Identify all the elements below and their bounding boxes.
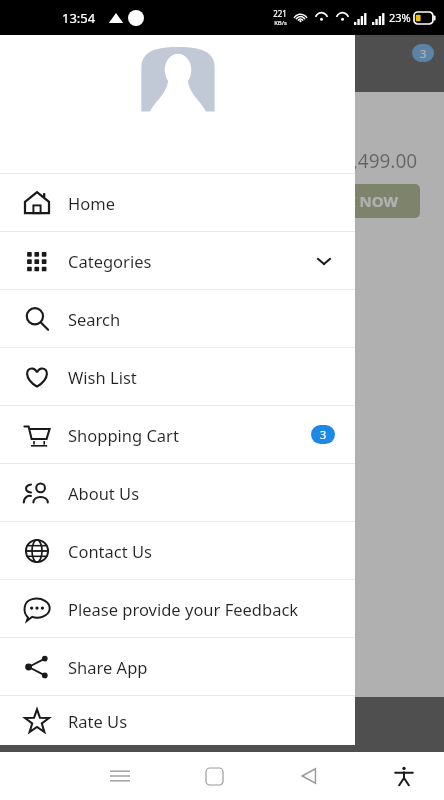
- staticText: Categories: [68, 250, 152, 272]
- button[interactable]: Please provide your Feedback: [0, 580, 355, 637]
- button[interactable]: Home: [192, 754, 236, 798]
- staticText: Rate Us: [68, 710, 128, 732]
- button[interactable]: Categories: [0, 232, 355, 289]
- button[interactable]: Share App: [0, 638, 355, 695]
- staticText: BOOK NOW: [312, 191, 398, 211]
- staticText: ₹ 1,499.00: [326, 148, 418, 174]
- staticText: KB/s: [274, 19, 287, 27]
- staticText: Wish List: [68, 366, 137, 388]
- staticText: About Us: [68, 482, 140, 504]
- staticText: Please provide your Feedback: [68, 598, 299, 620]
- button[interactable]: Accessibility: [382, 754, 426, 798]
- staticText: 3: [320, 427, 327, 442]
- button[interactable]: Wish List: [0, 348, 355, 405]
- button[interactable]: About Us: [0, 464, 355, 521]
- staticText: 23%: [389, 10, 411, 25]
- button[interactable]: Back: [287, 754, 331, 798]
- button[interactable]: Search: [0, 290, 355, 347]
- staticText: Shopping Cart: [68, 424, 179, 446]
- staticText: Home: [68, 192, 115, 214]
- staticText: Search: [68, 308, 121, 330]
- staticText: Contact Us: [68, 540, 152, 562]
- staticText: Share App: [68, 656, 148, 678]
- button[interactable]: Contact Us: [0, 522, 355, 579]
- button[interactable]: Home: [0, 174, 355, 231]
- button[interactable]: Shopping Cart: [0, 406, 355, 463]
- button[interactable]: BOOK NOW: [290, 184, 420, 218]
- staticText: 13:54: [62, 9, 96, 27]
- staticText: 3: [420, 46, 427, 61]
- button[interactable]: Rate Us: [0, 696, 355, 745]
- button[interactable]: Menu: [98, 754, 142, 798]
- staticText: 221: [273, 8, 287, 19]
